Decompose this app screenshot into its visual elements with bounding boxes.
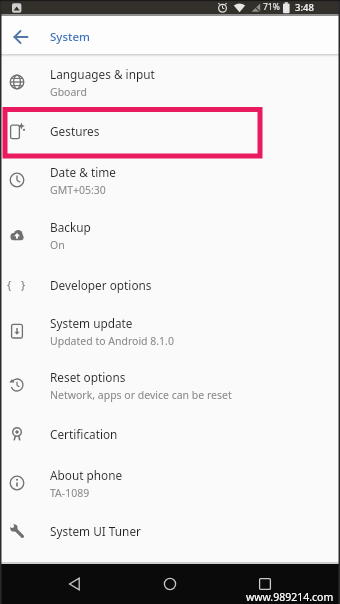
staticText: Developer options bbox=[50, 277, 152, 293]
button[interactable]: Gestures bbox=[0, 109, 340, 153]
staticText: Network, apps or device can be reset bbox=[50, 388, 232, 402]
button[interactable]: System update bbox=[0, 304, 340, 358]
button[interactable] bbox=[150, 564, 190, 604]
staticText: Gboard bbox=[50, 85, 87, 99]
button[interactable]: { bbox=[0, 262, 340, 307]
staticText: System UI Tuner bbox=[50, 523, 141, 539]
staticText: About phone bbox=[50, 467, 123, 483]
button[interactable] bbox=[8, 24, 34, 50]
staticText: Languages & input bbox=[50, 66, 155, 82]
staticText: Gestures bbox=[50, 123, 100, 139]
staticText: Updated to Android 8.1.0 bbox=[50, 334, 174, 348]
staticText: 71% bbox=[263, 1, 280, 13]
button[interactable]: Reset options bbox=[0, 358, 340, 412]
button[interactable]: Date & time bbox=[0, 153, 340, 207]
button[interactable] bbox=[245, 564, 285, 604]
button[interactable]: Certification bbox=[0, 412, 340, 456]
button[interactable]: Languages & input bbox=[0, 55, 340, 109]
staticText: On bbox=[50, 238, 65, 252]
staticText: GMT+05:30 bbox=[50, 183, 106, 197]
button[interactable]: System UI Tuner bbox=[0, 509, 340, 553]
button[interactable]: Backup bbox=[0, 208, 340, 262]
staticText: Backup bbox=[50, 219, 91, 235]
staticText: Certification bbox=[50, 426, 118, 442]
staticText: Reset options bbox=[50, 369, 126, 385]
staticText: Date & time bbox=[50, 164, 116, 180]
staticText: 3:48 bbox=[295, 1, 314, 14]
button[interactable] bbox=[55, 564, 95, 604]
staticText: } bbox=[21, 277, 26, 292]
staticText: TA-1089 bbox=[50, 486, 90, 500]
staticText: System bbox=[50, 29, 90, 45]
staticText: System update bbox=[50, 315, 133, 331]
staticText: { bbox=[7, 277, 12, 292]
button[interactable]: About phone bbox=[0, 456, 340, 510]
staticText: www.989214.com bbox=[246, 590, 334, 604]
